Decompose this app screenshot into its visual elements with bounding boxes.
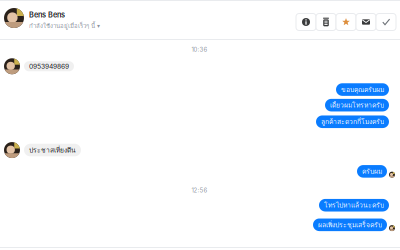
staticText: ประชาสเที่ยงดึน xyxy=(29,145,76,155)
button[interactable]: Star xyxy=(336,13,356,30)
button[interactable]: Delete xyxy=(316,13,336,30)
button[interactable]: Bens Bens xyxy=(4,5,100,31)
staticText: ขอบคุณครับผม xyxy=(341,84,384,95)
staticText: กำลังใช้งานอยู่เมื่อเร็วๆ นี้ ▾ xyxy=(29,21,100,31)
staticText: ผลเพิ่งประชุมเสร็จครับ xyxy=(318,219,382,230)
staticText: Bens Bens xyxy=(29,10,65,19)
button[interactable]: Done xyxy=(376,13,396,30)
button[interactable]: Info xyxy=(296,13,316,30)
staticText: 12:56 xyxy=(191,187,207,194)
staticText: ครับผม xyxy=(362,166,382,177)
staticText: 0953949869 xyxy=(29,62,69,70)
staticText: 10:36 xyxy=(191,46,207,53)
staticText: โทรไปหาแล้วนะครับ xyxy=(324,200,384,210)
button[interactable]: Mail xyxy=(356,13,376,30)
staticText: เดี๋ยวผมโทรหาครับ xyxy=(330,100,384,110)
staticText: ลูกค้าสะดวกกี่โมงครับ xyxy=(321,116,384,127)
